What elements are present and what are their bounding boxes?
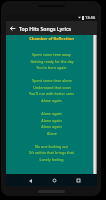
staticText: Top Hits Songs Lyrics	[19, 25, 71, 32]
staticText: Alone again	[41, 118, 62, 123]
button[interactable]: Recent apps	[74, 176, 83, 185]
staticText: No one looking out	[35, 144, 68, 149]
staticText: 13:56	[85, 15, 96, 20]
staticText: Understand that soon	[33, 85, 71, 90]
staticText: Chamber of Reflection	[29, 36, 74, 41]
staticText: Alone again	[41, 111, 62, 116]
staticText: You're born again	[36, 65, 67, 70]
button[interactable]: Home	[50, 176, 59, 185]
staticText: Getting ready for the day	[30, 59, 74, 64]
button[interactable]: Back	[26, 176, 35, 185]
staticText: Spent some time alone	[32, 78, 72, 83]
staticText: Alone again	[41, 124, 62, 129]
staticText: It's within that brings that	[29, 150, 74, 155]
button[interactable]: Back	[6, 21, 19, 35]
staticText: You'll run with better sons	[29, 91, 74, 96]
staticText: Spent some time away	[32, 52, 71, 57]
staticText: Lonely feeling	[39, 157, 64, 162]
staticText: Alone	[47, 131, 57, 136]
staticText: Alone again	[41, 98, 62, 103]
